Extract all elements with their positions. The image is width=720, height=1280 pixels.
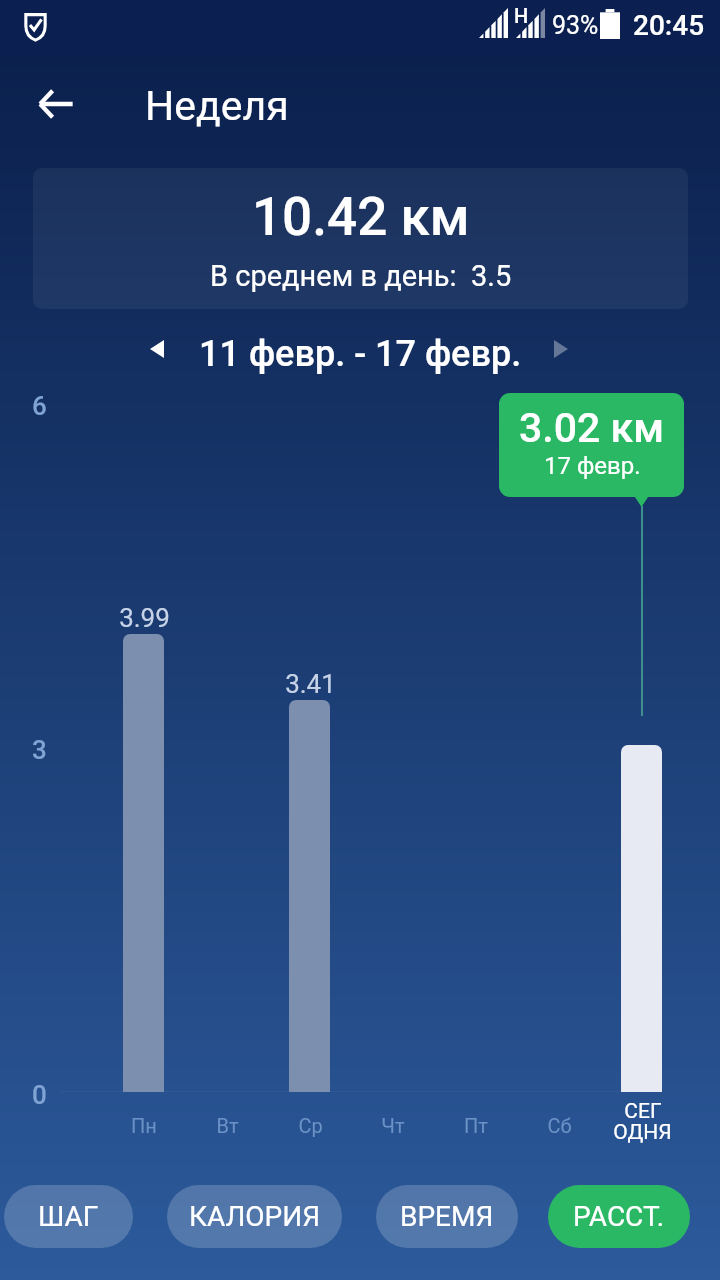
staticText: ШАГ — [38, 1200, 99, 1233]
staticText: H — [514, 4, 529, 27]
staticText: 0 — [32, 1080, 47, 1110]
staticText: 3.99 — [119, 603, 170, 633]
staticText: 11 февр. - 17 февр. — [199, 333, 522, 375]
staticText: 10.42 км — [252, 186, 470, 248]
staticText: 93% — [552, 11, 599, 40]
button[interactable]: Back — [32, 80, 80, 128]
staticText: Ср — [298, 1114, 323, 1137]
staticText: Пт — [464, 1114, 488, 1137]
button[interactable]: РАССТ. — [548, 1185, 690, 1248]
button[interactable]: Ср — [289, 700, 330, 1092]
button[interactable]: КАЛОРИЯ — [167, 1185, 342, 1248]
staticText: КАЛОРИЯ — [189, 1200, 321, 1233]
staticText: РАССТ. — [573, 1200, 665, 1233]
staticText: 6 — [32, 391, 47, 421]
staticText: Чт — [381, 1114, 405, 1137]
button[interactable]: 10.42 км — [33, 168, 688, 309]
staticText: 20:45 — [633, 9, 705, 42]
staticText: 3 — [32, 735, 47, 765]
button[interactable]: ШАГ — [4, 1185, 133, 1248]
staticText: Неделя — [145, 82, 289, 130]
staticText: ВРЕМЯ — [400, 1200, 494, 1233]
staticText: 17 февр. — [544, 452, 641, 480]
button[interactable]: СЕГОДНЯ — [602, 1099, 682, 1149]
button[interactable]: Next week — [539, 327, 583, 371]
staticText: Сб — [547, 1114, 572, 1137]
staticText: СЕГ — [624, 1099, 662, 1124]
staticText: В среднем в день: 3.5 — [210, 259, 512, 293]
button[interactable]: 3.02 км — [499, 393, 684, 497]
button[interactable]: Previous week — [135, 327, 179, 371]
button[interactable]: СЕГОДНЯ — [621, 745, 662, 1092]
staticText: 3.41 — [285, 669, 336, 699]
button[interactable]: ВРЕМЯ — [376, 1185, 518, 1248]
staticText: Пн — [131, 1114, 157, 1137]
staticText: ОДНЯ — [613, 1120, 672, 1145]
staticText: Вт — [216, 1114, 239, 1137]
staticText: 3.02 км — [519, 404, 665, 452]
button[interactable]: Пн — [123, 634, 164, 1092]
